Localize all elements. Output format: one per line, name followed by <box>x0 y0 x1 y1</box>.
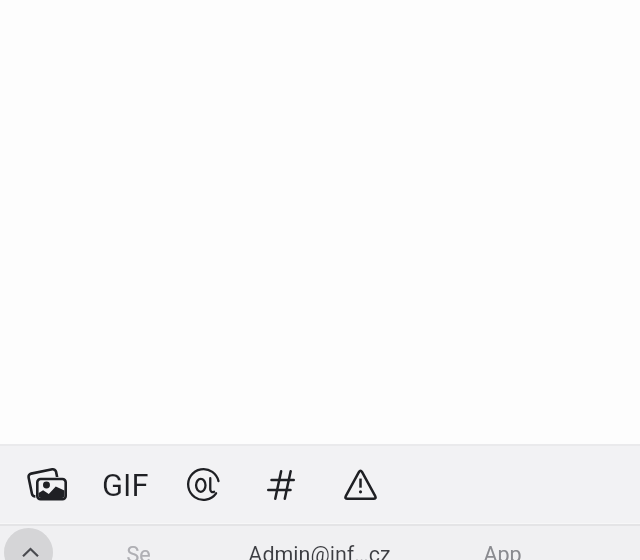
button[interactable]: Expand toolbar <box>4 528 53 560</box>
button[interactable]: Admin@inf…cz <box>214 524 425 560</box>
staticText: Admin@inf…cz <box>248 542 391 560</box>
staticText: App <box>483 542 522 560</box>
staticText: Se <box>126 542 151 560</box>
button[interactable]: App <box>425 524 579 560</box>
button[interactable]: Mention <box>175 456 231 512</box>
button[interactable]: Se <box>62 524 214 560</box>
button[interactable]: Hashtag <box>253 457 309 513</box>
button[interactable]: GIF <box>97 457 153 513</box>
button[interactable]: Photos <box>19 456 75 512</box>
staticText: GIF <box>102 467 149 503</box>
button[interactable]: Warning <box>332 456 388 512</box>
